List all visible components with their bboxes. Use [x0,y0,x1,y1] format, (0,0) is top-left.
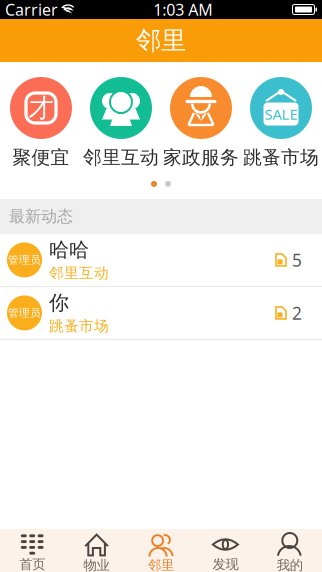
staticText: SALE [264,104,297,124]
button[interactable]: 才 [1,77,81,169]
button[interactable]: 发现 [193,529,258,572]
staticText: 物业 [84,557,110,572]
staticText: 首页 [19,556,45,572]
staticText: 邻里互动 [83,146,159,169]
button[interactable]: 管理员 [0,287,322,339]
staticText: 我的 [277,557,303,572]
button[interactable]: 物业 [64,529,129,572]
staticText: 5 [292,248,302,271]
staticText: 聚便宜 [12,146,69,169]
staticText: 发现 [212,556,238,572]
staticText: 管理员 [8,253,41,266]
staticText: 家政服务 [163,146,239,169]
button[interactable]: SALE [241,77,321,169]
staticText: 1:03 AM [153,0,213,20]
button[interactable]: 管理员 [0,234,322,286]
staticText: 跳蚤市场 [243,146,319,169]
staticText: 2 [292,301,302,324]
staticText: Carrier [5,0,58,20]
button[interactable]: 我的 [258,529,322,572]
staticText: 跳蚤市场 [49,317,109,335]
staticText: 邻里互动 [49,264,109,282]
staticText: 管理员 [8,306,41,319]
staticText: 最新动态 [9,207,73,226]
button[interactable]: 邻里 [129,529,193,572]
staticText: 邻里 [136,25,186,56]
staticText: 才 [28,92,53,123]
staticText: 你 [49,291,69,315]
button[interactable]: 家政服务 [161,77,241,169]
button[interactable]: 首页 [0,529,64,572]
button[interactable]: 邻里互动 [81,77,161,169]
staticText: 哈哈 [49,238,89,262]
staticText: 邻里 [148,557,174,572]
